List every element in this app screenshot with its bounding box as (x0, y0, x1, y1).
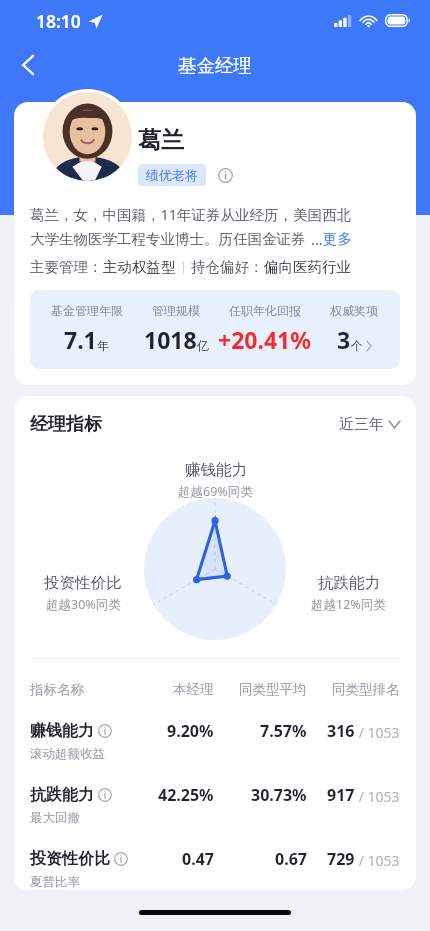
staticText: 最大回撤 (30, 810, 80, 826)
staticText: 投资性价比 (30, 849, 110, 869)
staticText: / 1053 (355, 787, 400, 806)
staticText: 超越12%同类 (311, 596, 386, 613)
staticText: 超越69%同类 (178, 483, 253, 500)
staticText: 本经理 (173, 681, 214, 698)
staticText: 葛兰，女，中国籍，11年证券从业经历，美国西北 (30, 204, 352, 224)
staticText: 任职年化回报 (229, 303, 301, 318)
button[interactable]: 基金管理年限 (30, 290, 400, 369)
staticText: 0.47 (182, 848, 214, 870)
button[interactable]: 大学生物医学工程专业博士。历任国金证券 (30, 229, 352, 249)
staticText: ... (311, 229, 323, 249)
button[interactable]: 赚钱能力 (30, 698, 400, 762)
staticText: 管理规模 (152, 303, 200, 318)
staticText: 18:10 (36, 9, 81, 33)
staticText: 年 (97, 338, 109, 353)
staticText: 同类型平均 (239, 681, 307, 698)
staticText: / 1053 (355, 723, 400, 742)
button[interactable]: 绩优老将 (138, 164, 206, 186)
staticText: 赚钱能力 (185, 460, 247, 480)
staticText: 经理指标 (30, 413, 102, 436)
staticText: 7.1 (64, 324, 97, 355)
staticText: 个 (351, 338, 363, 353)
staticText: 42.25% (158, 784, 214, 806)
staticText: 权威奖项 (330, 303, 378, 318)
staticText: 亿 (197, 338, 209, 353)
staticText: 指标名称 (30, 681, 84, 698)
button[interactable]: 投资性价比 (30, 826, 400, 890)
staticText: 基金经理 (178, 54, 252, 77)
button[interactable]: 抗跌能力 (30, 762, 400, 826)
staticText: 9.20% (167, 720, 214, 742)
staticText: 7.57% (260, 720, 307, 742)
staticText: 917 (327, 784, 355, 806)
staticText: 729 (327, 848, 355, 870)
staticText: 大学生物医学工程专业博士。历任国金证券 (30, 230, 306, 248)
staticText: 更多 (323, 230, 352, 248)
staticText: 主动权益型 (103, 258, 176, 276)
staticText: 葛兰 (138, 126, 184, 155)
staticText: 偏向医药行业 (264, 258, 351, 276)
staticText: 近三年 (339, 415, 384, 434)
staticText: 1018 (144, 324, 197, 355)
staticText: 超越30%同类 (46, 596, 121, 613)
staticText: 抗跌能力 (318, 573, 380, 593)
staticText: 绩优老将 (146, 167, 198, 183)
staticText: 3 (337, 324, 351, 355)
staticText: 持仓偏好： (191, 258, 264, 276)
button[interactable]: 基金经理头像 (43, 92, 132, 181)
button[interactable]: 近三年 (339, 415, 400, 434)
staticText: 赚钱能力 (30, 721, 94, 741)
staticText: 316 (327, 720, 355, 742)
staticText: / 1053 (355, 851, 400, 870)
staticText: +20.41% (218, 324, 311, 355)
staticText: 滚动超额收益 (30, 746, 105, 762)
staticText: 同类型排名 (332, 681, 400, 698)
button[interactable]: 标签说明 (216, 166, 234, 184)
staticText: 基金管理年限 (51, 303, 123, 318)
staticText: 夏普比率 (30, 874, 80, 890)
staticText: 30.73% (251, 784, 307, 806)
staticText: 投资性价比 (44, 573, 122, 593)
staticText: 抗跌能力 (30, 785, 94, 805)
staticText: 0.67 (275, 848, 307, 870)
button[interactable]: 返回 (6, 43, 50, 87)
staticText: 主要管理： (30, 258, 103, 276)
